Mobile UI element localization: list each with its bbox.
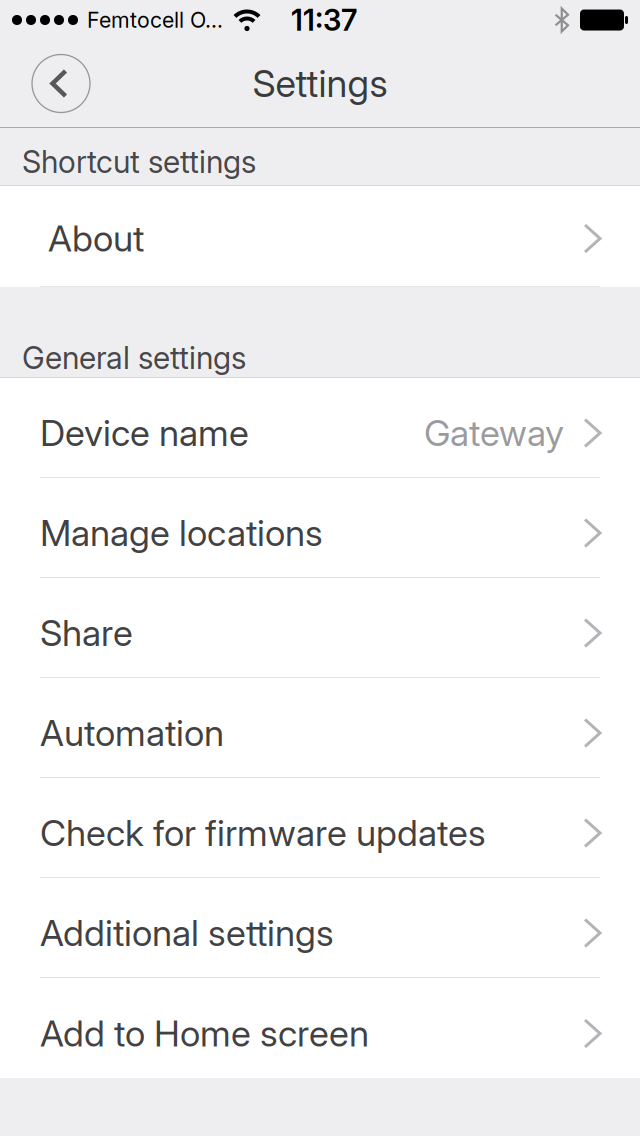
staticText: Automation: [40, 712, 224, 754]
staticText: Additional settings: [40, 912, 334, 954]
staticText: Device name: [40, 412, 249, 454]
staticText: Femtocell O…: [87, 7, 223, 33]
button[interactable]: Add to Home screen: [0, 978, 640, 1078]
button[interactable]: Device name: [0, 378, 640, 477]
staticText: Add to Home screen: [40, 1012, 369, 1055]
button[interactable]: Check for firmware updates: [0, 778, 640, 877]
staticText: Shortcut settings: [22, 144, 256, 180]
button[interactable]: Additional settings: [0, 878, 640, 977]
staticText: Settings: [252, 61, 387, 105]
button[interactable]: Automation: [0, 678, 640, 777]
staticText: Check for firmware updates: [40, 812, 486, 854]
staticText: Manage locations: [40, 512, 323, 554]
button[interactable]: About: [0, 186, 640, 286]
staticText: About: [48, 217, 144, 260]
button[interactable]: Back: [31, 53, 91, 113]
staticText: Gateway: [424, 412, 564, 454]
staticText: General settings: [22, 340, 246, 376]
staticText: 11:37: [291, 3, 357, 37]
staticText: Share: [40, 612, 133, 654]
button[interactable]: Manage locations: [0, 478, 640, 577]
button[interactable]: Share: [0, 578, 640, 677]
